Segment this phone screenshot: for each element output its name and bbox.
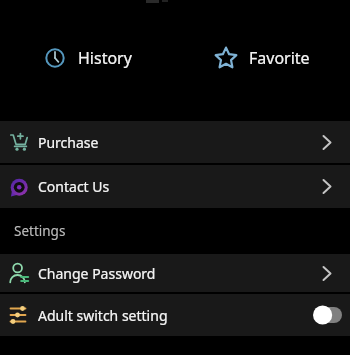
button[interactable]: Contact Us bbox=[0, 165, 350, 208]
button[interactable]: Favorite bbox=[175, 20, 350, 96]
button[interactable]: Adult switch setting bbox=[0, 294, 350, 336]
staticText: History bbox=[78, 47, 132, 69]
button[interactable]: History bbox=[0, 20, 175, 96]
staticText: Favorite bbox=[249, 47, 310, 69]
staticText: Change Password bbox=[38, 264, 156, 283]
button[interactable]: Purchase bbox=[0, 121, 350, 163]
staticText: Purchase bbox=[38, 133, 99, 152]
staticText: Adult switch setting bbox=[38, 306, 168, 325]
button[interactable]: Change Password bbox=[0, 254, 350, 292]
staticText: Settings bbox=[14, 222, 66, 240]
staticText: Contact Us bbox=[38, 177, 110, 196]
